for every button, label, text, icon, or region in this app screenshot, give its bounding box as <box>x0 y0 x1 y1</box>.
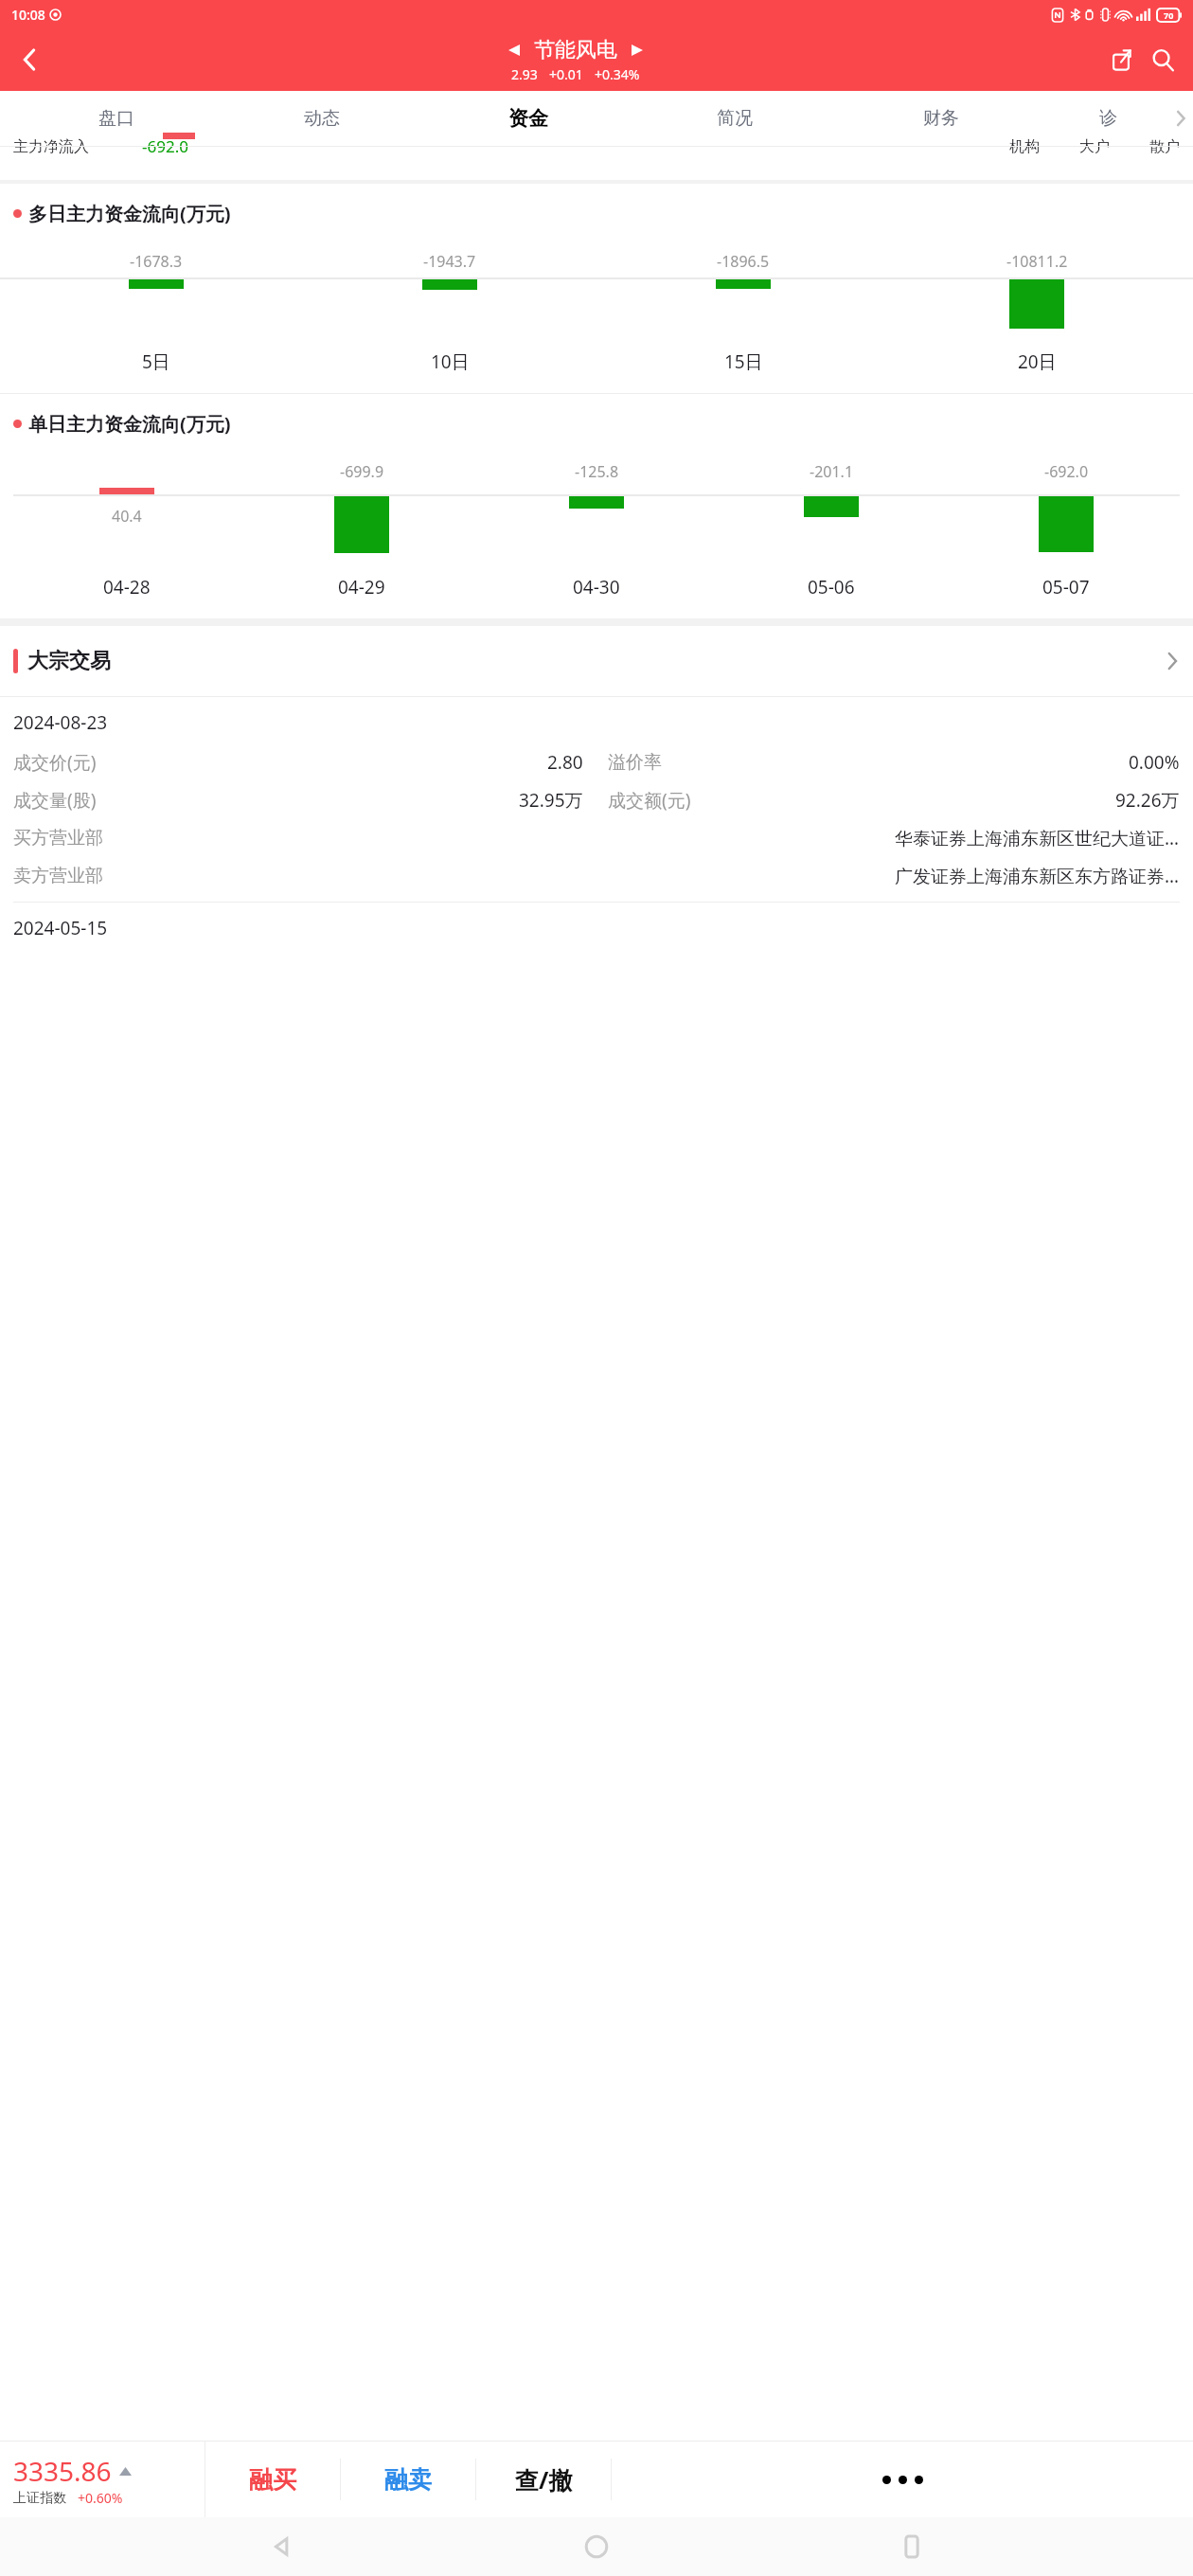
staticText: 40.4 <box>112 506 142 527</box>
staticText: 融买 <box>249 2465 296 2495</box>
staticText: 财务 <box>923 107 959 130</box>
staticText: -1678.3 <box>130 251 183 272</box>
staticText: +0.01 <box>549 65 583 83</box>
button[interactable]: Search <box>1142 39 1184 80</box>
staticText: 简况 <box>717 107 753 130</box>
staticText: 2024-05-15 <box>13 916 108 940</box>
button[interactable]: 查/撤 <box>476 2442 611 2517</box>
staticText: 溢价率 <box>608 751 662 774</box>
staticText: 卖方营业部 <box>13 865 103 887</box>
button[interactable]: 融卖 <box>341 2442 475 2517</box>
staticText: 广发证券上海浦东新区东方路证券… <box>895 864 1180 888</box>
staticText: 3335.86 <box>13 2453 112 2489</box>
staticText: 节能风电 <box>534 37 617 63</box>
staticText: 2.93 <box>511 65 538 83</box>
button[interactable]: 3335.86 <box>0 2453 205 2507</box>
staticText: -692.0 <box>1044 461 1089 482</box>
staticText: 成交价(元) <box>13 750 97 775</box>
staticText: 5日 <box>142 349 170 374</box>
staticText: 资金 <box>508 106 548 131</box>
button[interactable]: Share <box>1100 39 1142 80</box>
staticText: 2.80 <box>547 750 583 775</box>
staticText: +0.34% <box>595 65 640 83</box>
staticText: 成交额(元) <box>608 788 691 813</box>
staticText: 动态 <box>304 107 340 130</box>
staticText: 05-06 <box>808 575 855 599</box>
button[interactable]: Next stock <box>627 40 648 61</box>
staticText: 15日 <box>724 349 763 374</box>
button[interactable]: More <box>612 2476 1193 2484</box>
staticText: 散户 <box>1149 137 1180 156</box>
staticText: -125.8 <box>575 461 619 482</box>
staticText: 04-30 <box>573 575 620 599</box>
staticText: 10:08 <box>11 6 45 24</box>
staticText: 机构 <box>1009 137 1040 156</box>
button[interactable]: Recents <box>879 2517 945 2576</box>
button[interactable]: 财务 <box>838 107 1044 130</box>
staticText: 华泰证券上海浦东新区世纪大道证… <box>895 826 1180 850</box>
staticText: 买方营业部 <box>13 827 103 850</box>
staticText: -692.0 <box>142 135 188 157</box>
staticText: 大宗交易 <box>27 648 111 674</box>
staticText: 成交量(股) <box>13 788 97 813</box>
staticText: 主力净流入 <box>13 137 89 156</box>
staticText: -1943.7 <box>423 251 476 272</box>
button[interactable]: 资金 <box>425 106 632 131</box>
button[interactable]: 诊 <box>1044 107 1172 130</box>
staticText: 0.00% <box>1129 750 1180 775</box>
staticText: 04-29 <box>338 575 385 599</box>
button[interactable]: 盘口 <box>13 107 219 130</box>
button[interactable]: Back <box>9 39 51 80</box>
staticText: 上证指数 <box>13 2490 66 2507</box>
staticText: +0.60% <box>78 2489 123 2507</box>
staticText: 2024-08-23 <box>13 710 108 735</box>
button[interactable]: 简况 <box>632 107 838 130</box>
button[interactable]: Previous stock <box>504 40 525 61</box>
staticText: -699.9 <box>340 461 384 482</box>
staticText: 多日主力资金流向(万元) <box>28 201 231 226</box>
staticText: 10日 <box>431 349 470 374</box>
staticText: -10811.2 <box>1006 251 1068 272</box>
staticText: 诊 <box>1099 107 1117 130</box>
button[interactable]: 融买 <box>205 2442 340 2517</box>
button[interactable]: 动态 <box>219 107 425 130</box>
staticText: 92.26万 <box>1115 788 1180 813</box>
staticText: 查/撤 <box>515 2463 573 2495</box>
staticText: 融卖 <box>384 2465 432 2495</box>
staticText: -1896.5 <box>717 251 770 272</box>
staticText: -201.1 <box>810 461 854 482</box>
button[interactable]: Home <box>563 2517 630 2576</box>
staticText: 单日主力资金流向(万元) <box>28 411 231 437</box>
button[interactable]: Back <box>249 2517 315 2576</box>
staticText: 04-28 <box>103 575 151 599</box>
staticText: 70 <box>1164 9 1174 21</box>
staticText: 32.95万 <box>519 788 583 813</box>
staticText: 盘口 <box>98 107 134 130</box>
staticText: 大户 <box>1079 137 1110 156</box>
button[interactable]: 大宗交易 <box>0 626 1193 696</box>
staticText: 20日 <box>1018 349 1057 374</box>
staticText: 05-07 <box>1042 575 1090 599</box>
